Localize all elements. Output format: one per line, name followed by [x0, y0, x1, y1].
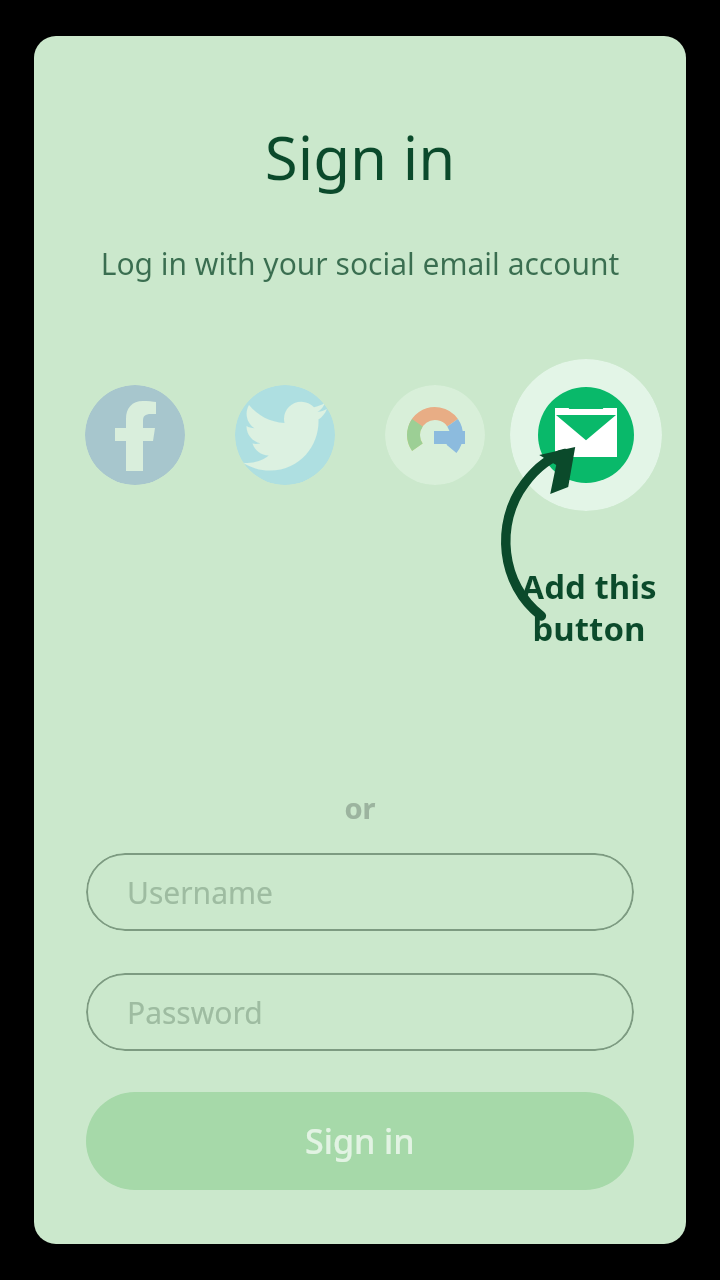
button[interactable]: Username	[86, 853, 634, 931]
button[interactable]: Password	[86, 973, 634, 1051]
staticText: Password	[127, 992, 263, 1033]
button[interactable]: Sign in with email	[510, 359, 662, 511]
staticText: or	[34, 788, 686, 827]
button[interactable]: Sign in	[86, 1092, 634, 1190]
staticText: Sign in	[34, 116, 686, 198]
button[interactable]: Sign in with Google	[385, 385, 485, 485]
button[interactable]: Sign in with Twitter	[235, 385, 335, 485]
staticText: Log in with your social email account	[34, 243, 686, 284]
staticText: Sign in	[305, 1118, 415, 1164]
staticText: Add this button	[459, 564, 686, 651]
button[interactable]: Sign in with Facebook	[85, 385, 185, 485]
staticText: Username	[127, 872, 273, 913]
